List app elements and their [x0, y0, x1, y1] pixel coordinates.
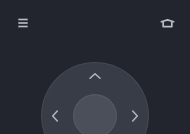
button[interactable]: Select — [73, 94, 117, 134]
button[interactable]: Right — [118, 99, 149, 133]
button[interactable]: Menu — [11, 11, 34, 34]
button[interactable]: Up — [78, 62, 112, 93]
button[interactable]: Home — [155, 11, 178, 34]
button[interactable]: Left — [41, 99, 72, 133]
